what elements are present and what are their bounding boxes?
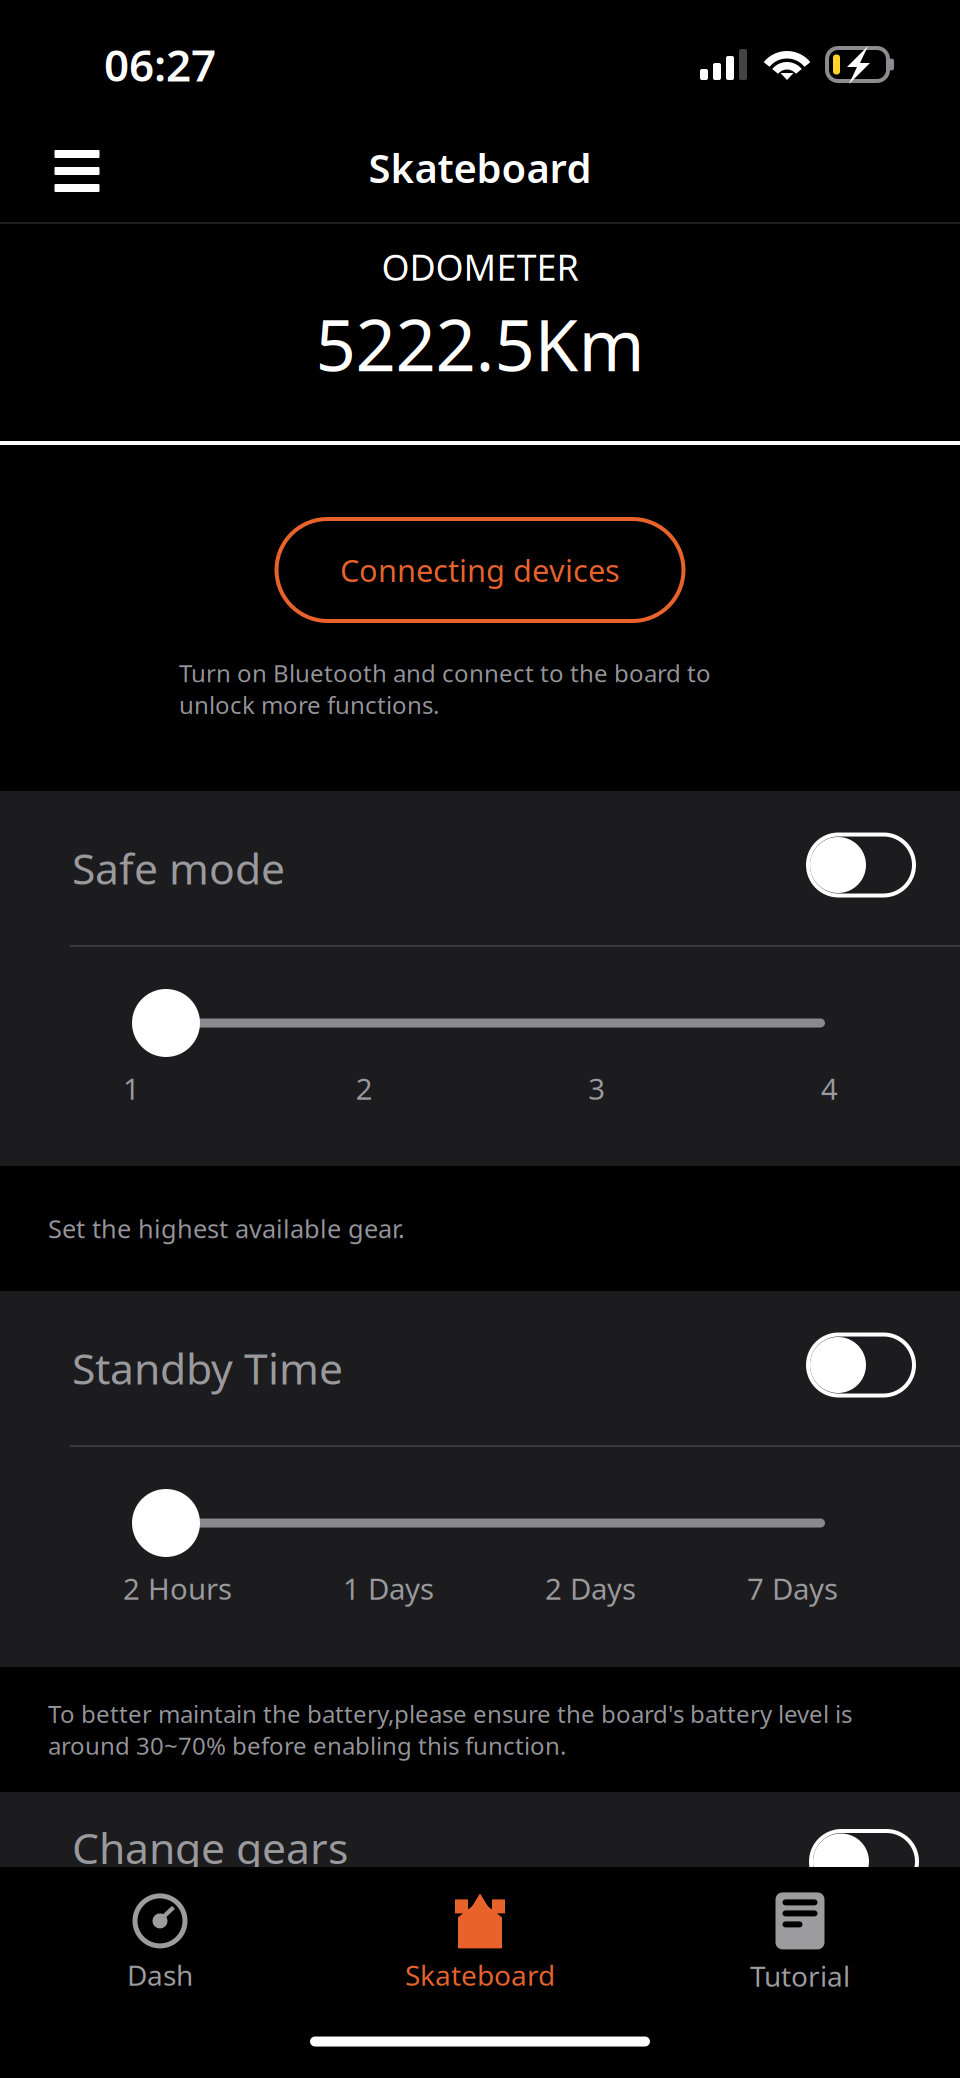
button[interactable]: Skateboard [320,1874,640,2005]
button[interactable]: Standby Time toggle [808,1334,914,1401]
staticText: 4 [821,1069,838,1108]
button[interactable]: Safe mode toggle [808,834,914,901]
staticText: Tutorial [750,1957,850,1995]
staticText: 5222.5Km [315,297,644,391]
staticText: Connecting devices [340,550,620,590]
staticText: Dash [127,1956,193,1994]
staticText: To better maintain the battery,please en… [48,1698,852,1761]
staticText: 2 [356,1069,373,1108]
staticText: 2 Hours [123,1569,232,1608]
staticText: Standby Time [72,1340,343,1396]
staticText: 06:27 [104,35,216,94]
staticText: 1 Days [343,1569,434,1608]
staticText: 3 [588,1069,605,1108]
staticText: 1 [123,1069,140,1108]
button[interactable]: Change gears toggle [811,1831,917,1892]
staticText: ODOMETER [381,243,578,291]
staticText: 2 Days [545,1569,636,1608]
staticText: Turn on Bluetooth and connect to the boa… [179,657,711,721]
staticText: Safe mode [72,840,285,896]
staticText: Skateboard [405,1956,555,1994]
staticText: Set the highest available gear. [48,1212,405,1245]
staticText: Skateboard [368,141,591,194]
button[interactable]: Menu [31,122,123,212]
staticText: Change gears [72,1819,348,1876]
button[interactable]: Dash [0,1874,320,2005]
button[interactable]: Tutorial [640,1873,960,2006]
staticText: 7 Days [747,1569,838,1608]
button[interactable]: Connecting devices [276,519,683,621]
